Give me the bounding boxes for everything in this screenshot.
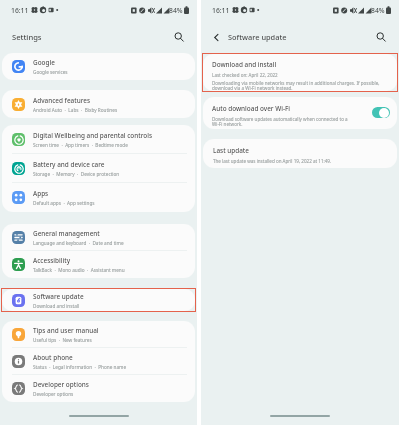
staticText: 84% — [169, 6, 183, 15]
staticText: Language and keyboard · Date and time — [33, 240, 124, 246]
button[interactable]: Auto download over Wi-Fi toggle — [372, 107, 390, 118]
staticText: General management — [33, 229, 100, 238]
button[interactable]: Back — [209, 30, 223, 44]
button[interactable]: Battery and device care — [2, 154, 195, 183]
staticText: TalkBack · Mono audio · Assistant menu — [33, 267, 125, 273]
staticText: Auto download over Wi-Fi — [212, 104, 291, 113]
button[interactable]: Tips and user manual — [2, 321, 195, 348]
staticText: Developer options — [33, 391, 74, 397]
button[interactable]: Digital Wellbeing and parental controls — [2, 125, 195, 154]
staticText: Useful tips · New features — [33, 337, 92, 343]
staticText: Google — [33, 58, 55, 67]
staticText: Advanced features — [33, 96, 91, 105]
staticText: Software update — [228, 32, 287, 42]
button[interactable]: Search — [171, 29, 187, 45]
staticText: Google services — [33, 69, 68, 75]
staticText: 84% — [371, 6, 385, 15]
staticText: Digital Wellbeing and parental controls — [33, 131, 153, 140]
staticText: Last checked on: April 22, 2022 — [212, 72, 278, 78]
staticText: The last update was installed on April 1… — [213, 158, 332, 164]
button[interactable]: Google — [2, 53, 195, 80]
staticText: Tips and user manual — [33, 326, 99, 335]
button[interactable]: Accessibility — [2, 251, 195, 278]
staticText: About phone — [33, 353, 73, 362]
staticText: 16:11 — [212, 6, 230, 15]
button[interactable]: Auto download over Wi-Fi — [203, 97, 397, 128]
staticText: Downloading via mobile networks may resu… — [212, 80, 388, 91]
button[interactable]: Advanced features — [2, 90, 195, 118]
staticText: Android Auto · Labs · Bixby Routines — [33, 107, 118, 113]
staticText: Battery and device care — [33, 160, 105, 169]
staticText: Screen time · App timers · Bedtime mode — [33, 142, 128, 148]
staticText: Last update — [213, 146, 249, 155]
staticText: 16:11 — [11, 6, 29, 15]
button[interactable]: Software update — [2, 289, 195, 311]
button[interactable]: Search — [373, 29, 389, 45]
staticText: Storage · Memory · Device protection — [33, 171, 120, 177]
button[interactable]: About phone — [2, 348, 195, 375]
staticText: Download and install — [212, 60, 277, 69]
staticText: Download software updates automatically … — [212, 116, 349, 128]
staticText: Software update — [33, 292, 84, 301]
button[interactable]: General management — [2, 224, 195, 251]
button[interactable]: Download and install — [203, 54, 397, 91]
staticText: Accessibility — [33, 256, 71, 265]
button[interactable]: Last update — [203, 139, 397, 164]
staticText: Developer options — [33, 380, 89, 389]
staticText: Status · Legal information · Phone name — [33, 364, 127, 370]
button[interactable]: Developer options — [2, 375, 195, 402]
staticText: Download and install — [33, 303, 80, 309]
staticText: Apps — [33, 189, 49, 198]
button[interactable]: Apps — [2, 183, 195, 212]
staticText: Default apps · App settings — [33, 200, 95, 206]
staticText: Settings — [12, 32, 42, 42]
